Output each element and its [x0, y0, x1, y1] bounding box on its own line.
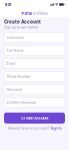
button[interactable]: Full Name — [4, 46, 65, 55]
button[interactable]: Create Account — [4, 113, 65, 124]
staticText: Create Account — [21, 116, 48, 120]
button[interactable]: Sign In — [50, 126, 61, 130]
button[interactable]: Username — [4, 33, 65, 42]
staticText: Sign up to get started — [4, 25, 38, 29]
staticText: Already have an account? — [7, 126, 49, 130]
staticText: Email — [6, 61, 15, 65]
button[interactable]: Phone Number — [4, 72, 65, 81]
staticText: Sign In — [50, 126, 61, 130]
button[interactable]: Password — [4, 85, 65, 94]
button[interactable]: Email — [4, 59, 65, 68]
staticText: Create Account — [4, 19, 41, 24]
staticText: Password — [6, 87, 22, 91]
staticText: Username — [6, 35, 23, 39]
staticText: Mentalia — [32, 11, 47, 16]
staticText: Phone Number — [6, 74, 30, 78]
staticText: Confirm Password — [6, 100, 36, 104]
staticText: Porta — [21, 11, 31, 16]
staticText: 9:41 — [4, 2, 11, 7]
staticText: Full Name — [6, 48, 23, 52]
button[interactable]: Confirm Password — [4, 98, 65, 107]
